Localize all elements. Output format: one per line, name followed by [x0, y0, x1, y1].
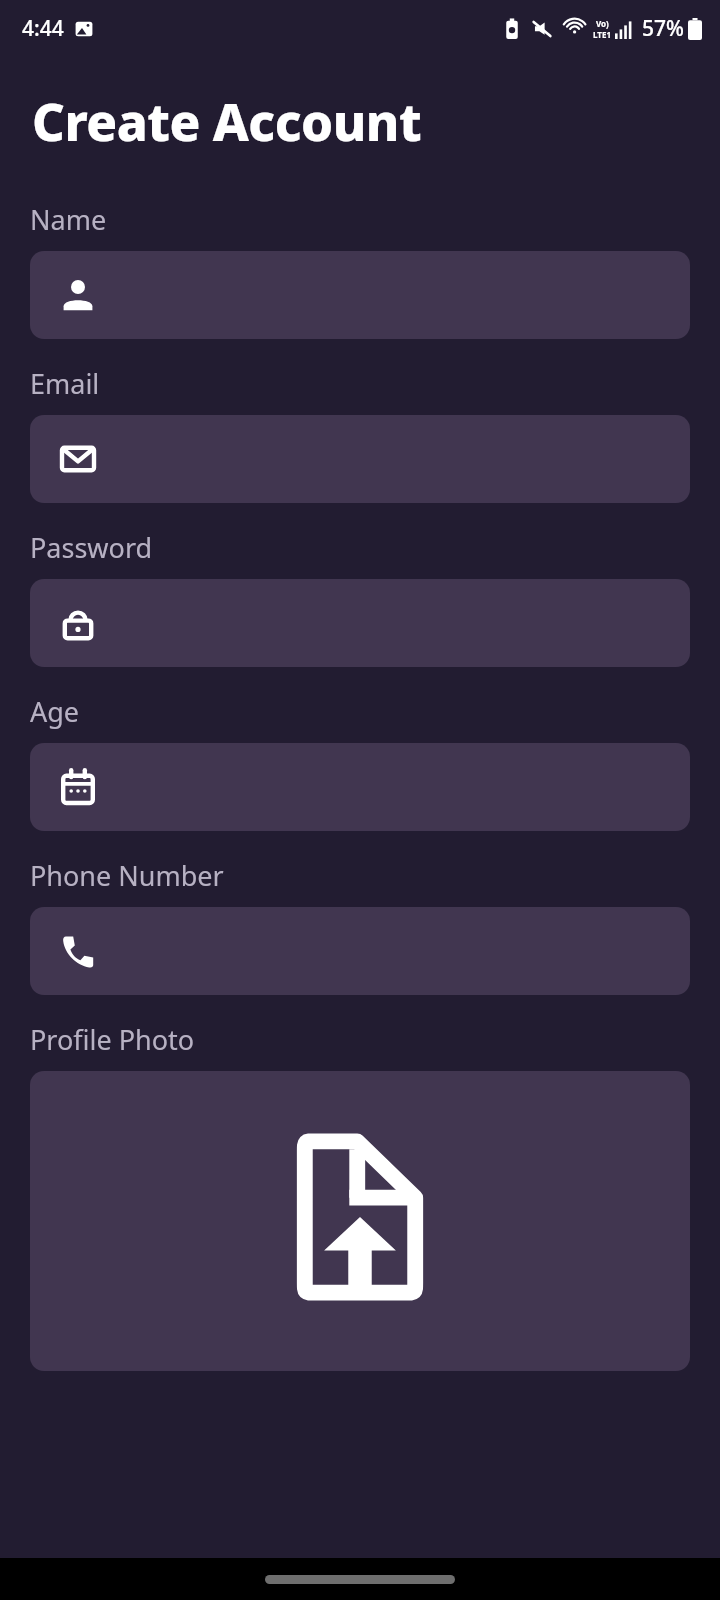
button[interactable] — [30, 415, 690, 503]
staticText: Name — [30, 201, 107, 238]
button[interactable] — [30, 579, 690, 667]
button[interactable] — [30, 251, 690, 339]
staticText: 57% — [642, 14, 684, 43]
staticText: Email — [30, 365, 100, 402]
staticText: Age — [30, 693, 80, 730]
staticText: Vo) — [596, 18, 609, 29]
staticText: LTE1 — [593, 29, 611, 40]
button[interactable]: Upload profile photo — [30, 1071, 690, 1371]
staticText: Profile Photo — [30, 1021, 195, 1058]
staticText: Create Account — [32, 86, 422, 155]
staticText: 4:44 — [22, 14, 64, 43]
button[interactable] — [30, 907, 690, 995]
staticText: Password — [30, 529, 153, 566]
staticText: Phone Number — [30, 857, 224, 894]
button[interactable] — [30, 743, 690, 831]
